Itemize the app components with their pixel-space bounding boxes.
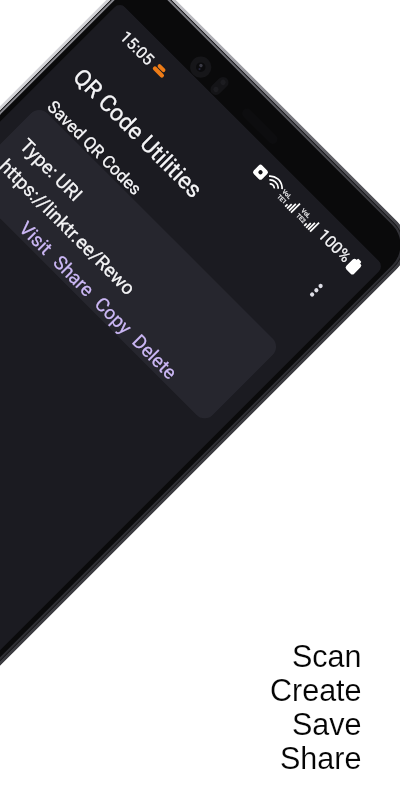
- staticText: Scan: [292, 639, 362, 673]
- staticText: TE1: [276, 193, 289, 205]
- staticText: https://linktr.ee/Rewo: [0, 154, 140, 299]
- staticText: TE2: [295, 212, 308, 224]
- staticText: 100%: [314, 225, 355, 266]
- staticText: VoL: [281, 188, 294, 200]
- staticText: Share: [49, 251, 99, 301]
- button[interactable]: Share: [45, 247, 103, 304]
- staticText: Delete: [128, 330, 182, 384]
- staticText: VoL: [300, 207, 313, 219]
- staticText: Save: [292, 707, 362, 741]
- staticText: 15:05: [116, 27, 158, 69]
- staticText: QR Code Utilities: [67, 63, 208, 204]
- staticText: Visit: [15, 217, 57, 259]
- button[interactable]: More options: [291, 265, 342, 316]
- button[interactable]: Delete: [125, 326, 185, 387]
- staticText: Type: URI: [16, 134, 87, 205]
- staticText: Saved QR Codes: [43, 96, 146, 199]
- button[interactable]: Type: URI: [0, 105, 281, 423]
- button[interactable]: Visit: [12, 213, 61, 263]
- staticText: Share: [280, 741, 362, 775]
- staticText: Copy: [91, 292, 137, 338]
- button[interactable]: Copy: [87, 289, 140, 342]
- staticText: Create: [270, 673, 362, 707]
